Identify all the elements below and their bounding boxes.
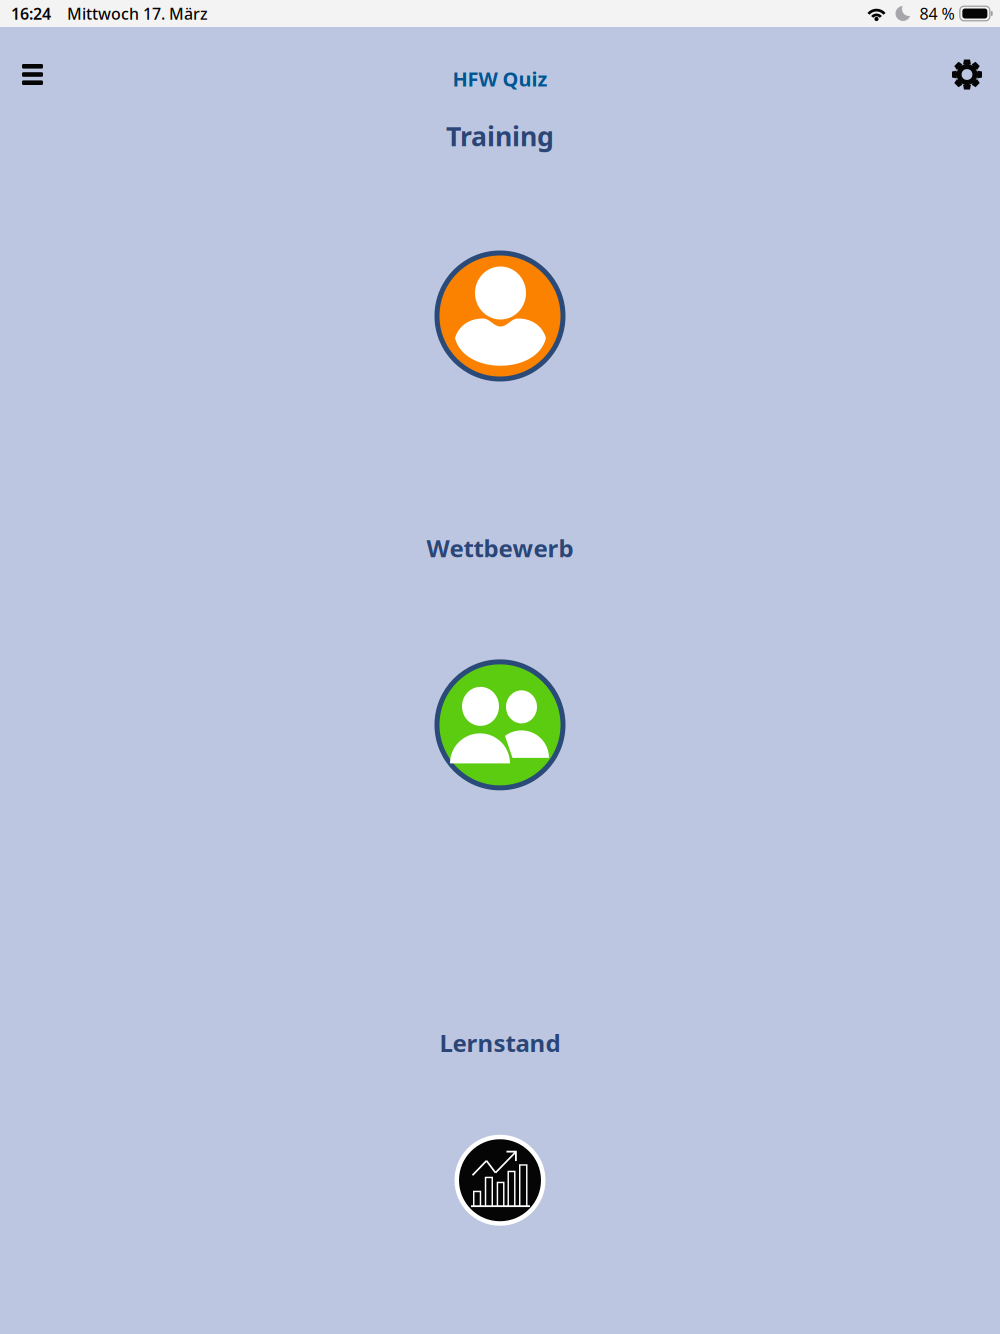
- button[interactable]: Lernstand: [454, 1135, 545, 1226]
- staticText: 16:24: [11, 3, 51, 24]
- staticText: Wettbewerb: [426, 532, 573, 564]
- staticText: Lernstand: [439, 1027, 560, 1059]
- button[interactable]: Menu: [12, 55, 53, 94]
- staticText: Mittwoch 17. März: [67, 3, 208, 24]
- staticText: Training: [446, 118, 554, 153]
- staticText: HFW Quiz: [452, 65, 547, 92]
- button[interactable]: Wettbewerb: [435, 660, 565, 790]
- button[interactable]: Settings: [944, 51, 990, 97]
- button[interactable]: Training: [435, 251, 565, 381]
- staticText: 84 %: [919, 3, 954, 24]
